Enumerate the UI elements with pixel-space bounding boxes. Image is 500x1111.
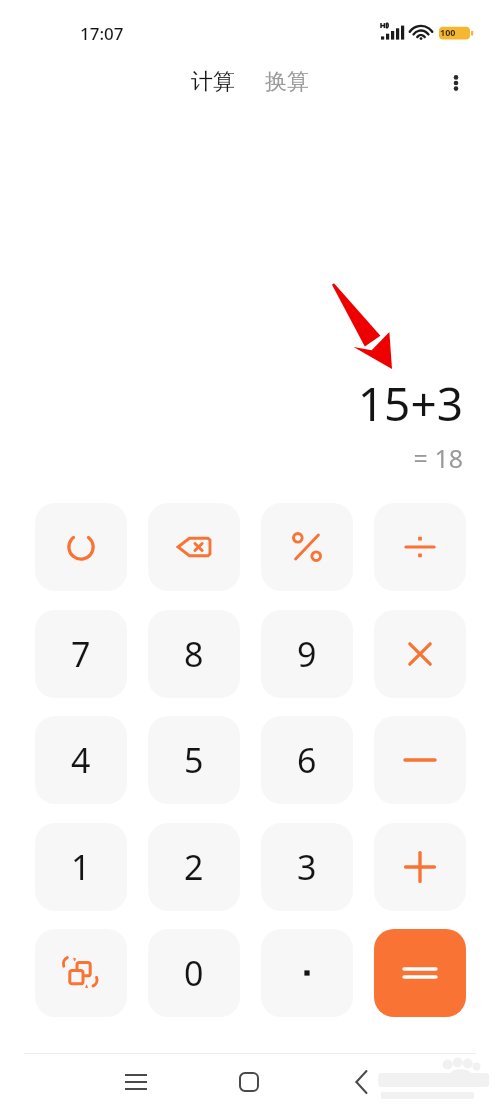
staticText: 7: [71, 631, 91, 677]
button[interactable]: More options: [437, 64, 475, 102]
staticText: 3: [297, 844, 317, 890]
staticText: 5: [184, 737, 204, 783]
button[interactable]: 换算: [259, 66, 315, 98]
button[interactable]: [374, 716, 466, 804]
staticText: 6: [297, 737, 317, 783]
button[interactable]: 6: [261, 716, 353, 804]
staticText: 2: [184, 844, 204, 890]
button[interactable]: Backspace: [148, 503, 240, 591]
button[interactable]: 2: [148, 823, 240, 911]
staticText: 9: [297, 631, 317, 677]
button[interactable]: 计算: [185, 66, 241, 98]
staticText: 换算: [265, 68, 309, 96]
button[interactable]: [261, 503, 353, 591]
button[interactable]: 4: [35, 716, 127, 804]
button[interactable]: 1: [35, 823, 127, 911]
button[interactable]: Home: [225, 1058, 273, 1106]
button[interactable]: 3: [261, 823, 353, 911]
button[interactable]: [374, 823, 466, 911]
button[interactable]: [261, 929, 353, 1017]
staticText: 17:07: [80, 22, 124, 45]
staticText: 1: [71, 844, 91, 890]
button[interactable]: Unit conversion: [35, 929, 127, 1017]
staticText: 0: [184, 950, 204, 996]
button[interactable]: 9: [261, 610, 353, 698]
button[interactable]: Recent apps: [112, 1058, 160, 1106]
staticText: 15+3: [357, 372, 463, 435]
button[interactable]: [374, 929, 466, 1017]
button[interactable]: 8: [148, 610, 240, 698]
staticText: 计算: [191, 68, 235, 96]
staticText: = 18: [413, 441, 463, 475]
button[interactable]: 0: [148, 929, 240, 1017]
button[interactable]: [374, 503, 466, 591]
staticText: 100: [440, 26, 456, 38]
staticText: 4: [71, 737, 91, 783]
staticText: 8: [184, 631, 204, 677]
button[interactable]: [374, 610, 466, 698]
button[interactable]: 5: [148, 716, 240, 804]
button[interactable]: Back: [338, 1058, 386, 1106]
button[interactable]: [35, 503, 127, 591]
button[interactable]: 7: [35, 610, 127, 698]
